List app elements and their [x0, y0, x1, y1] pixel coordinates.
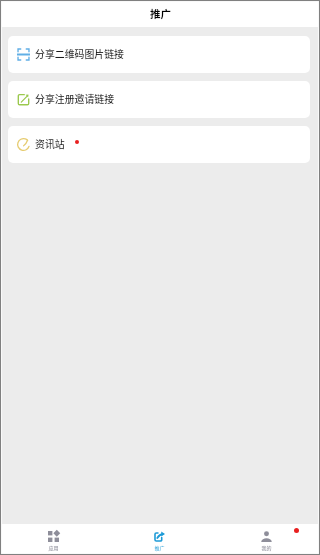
button[interactable]: 资讯站: [8, 126, 310, 163]
button[interactable]: 分享二维码图片链接: [8, 36, 310, 73]
staticText: 分享注册邀请链接: [35, 92, 115, 106]
other: 我的: [261, 531, 272, 542]
button[interactable]: 我的: [213, 524, 320, 555]
staticText: 推广: [150, 6, 171, 21]
button[interactable]: 应用: [0, 524, 106, 555]
staticText: 资讯站: [35, 137, 65, 151]
staticText: 推广: [154, 544, 165, 551]
staticText: 应用: [48, 544, 59, 551]
button[interactable]: 推广: [106, 524, 213, 555]
staticText: 我的: [261, 544, 272, 551]
other: 应用: [48, 531, 59, 542]
staticText: 分享二维码图片链接: [35, 47, 125, 61]
button[interactable]: 分享注册邀请链接: [8, 81, 310, 118]
other: 推广: [154, 531, 165, 542]
